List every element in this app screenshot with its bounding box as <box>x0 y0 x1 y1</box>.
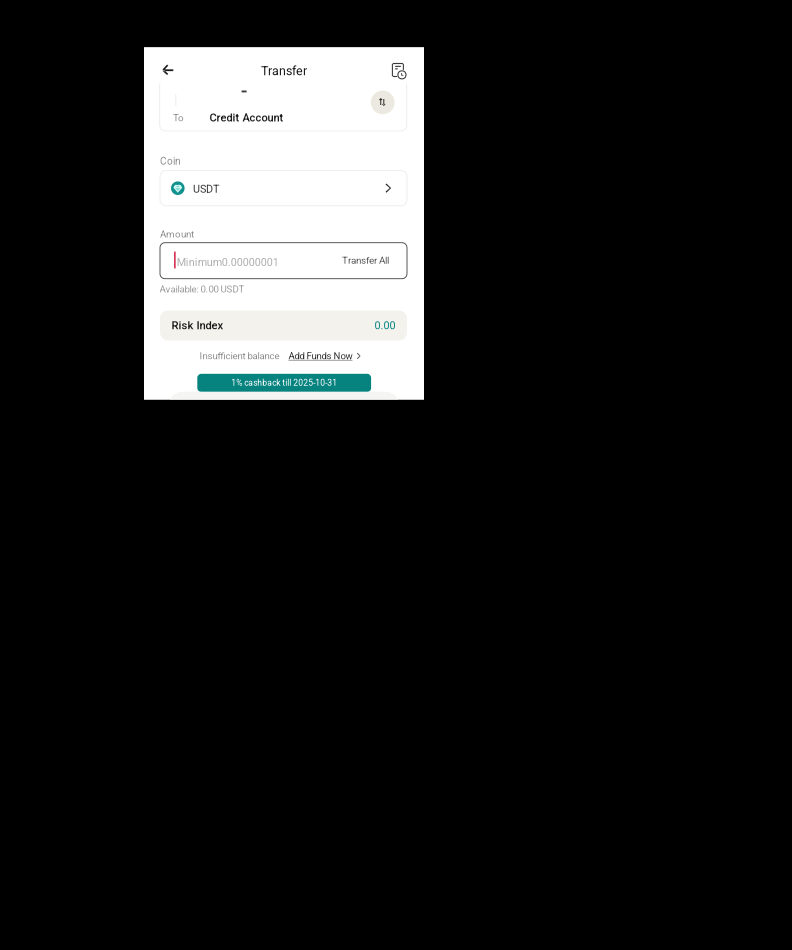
staticText: Insufficient balance <box>199 350 279 362</box>
staticText: Add Funds Now <box>288 350 352 362</box>
button[interactable]: Transfer history <box>386 58 409 81</box>
staticText: Coin <box>160 155 181 167</box>
button[interactable]: Back <box>156 58 179 81</box>
staticText: 1% cashback till 2025-10-31 <box>231 378 337 388</box>
button[interactable]: Confirm <box>168 392 400 422</box>
button[interactable]: USDT <box>160 170 407 206</box>
button[interactable]: Transfer All <box>342 255 389 266</box>
staticText: To <box>173 112 184 124</box>
staticText: 0.00 <box>374 319 395 332</box>
button[interactable]: Swap from and to accounts <box>371 90 395 114</box>
staticText: Amount <box>160 228 194 240</box>
staticText: Available: 0.00 USDT <box>159 283 244 295</box>
staticText: Credit Account <box>210 111 284 124</box>
staticText: USDT <box>193 183 219 195</box>
staticText: Minimum0.00000001 <box>177 256 279 269</box>
staticText: Transfer <box>261 64 307 78</box>
staticText: Risk Index <box>171 319 223 332</box>
staticText: Transfer All <box>342 255 389 266</box>
button[interactable]: Add Funds Now <box>288 350 360 362</box>
